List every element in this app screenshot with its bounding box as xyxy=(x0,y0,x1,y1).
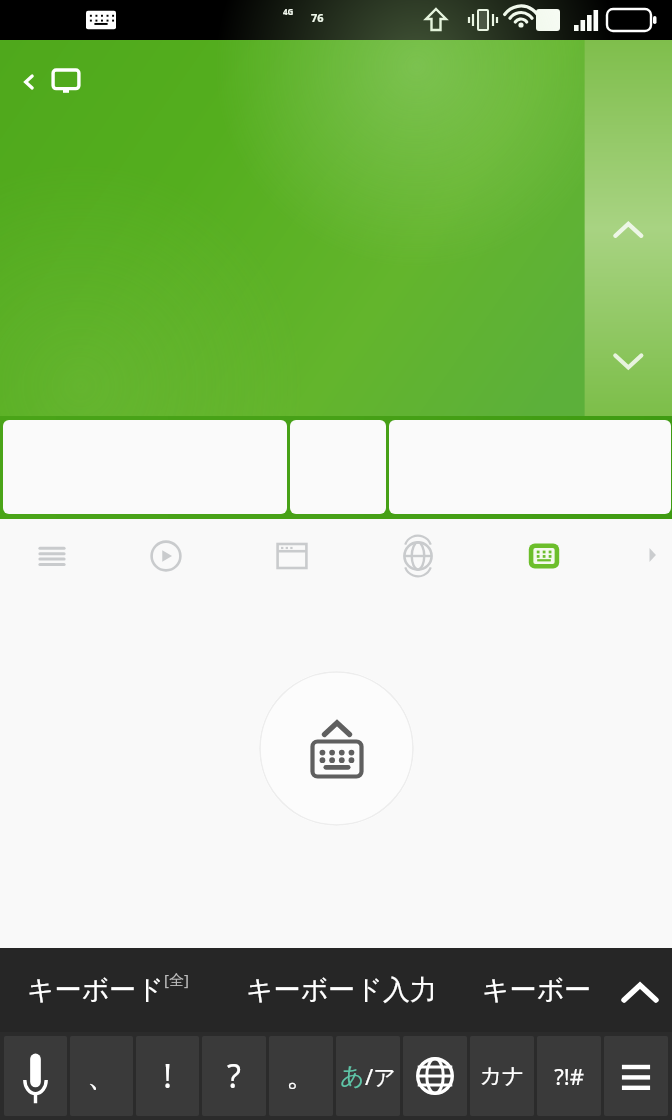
button[interactable] xyxy=(3,420,287,514)
staticText: 4G xyxy=(283,6,294,17)
button[interactable]: Play xyxy=(130,531,202,581)
staticText: ?!# xyxy=(554,1061,584,1091)
button[interactable]: Back xyxy=(12,65,46,99)
button[interactable]: カナ xyxy=(470,1036,534,1116)
button[interactable]: Menu xyxy=(16,531,88,581)
button[interactable]: Browser xyxy=(382,531,454,581)
staticText: 、 xyxy=(87,1057,117,1095)
staticText: カナ xyxy=(479,1062,525,1090)
button[interactable]: 、 xyxy=(70,1036,133,1116)
button[interactable]: ? xyxy=(202,1036,266,1116)
staticText: ! xyxy=(163,1054,172,1098)
button[interactable]: Voice input xyxy=(4,1036,67,1116)
button[interactable]: キーボード xyxy=(0,948,216,1032)
staticText: キーボー xyxy=(482,973,592,1007)
staticText: [全] xyxy=(164,969,189,989)
button[interactable]: ?!# xyxy=(537,1036,601,1116)
staticText: /ア xyxy=(365,1061,396,1091)
staticText: ? xyxy=(227,1054,241,1098)
button[interactable]: Keyboard menu xyxy=(604,1036,668,1116)
button[interactable]: More xyxy=(638,541,666,569)
button[interactable]: Cast to screen xyxy=(46,62,86,102)
button[interactable] xyxy=(290,420,386,514)
staticText: キーボード xyxy=(27,973,164,1007)
button[interactable]: Expand suggestions xyxy=(608,948,672,1032)
button[interactable]: Keyboard xyxy=(508,531,580,581)
button[interactable]: キーボー xyxy=(466,948,608,1032)
button[interactable] xyxy=(389,420,671,514)
staticText: 。 xyxy=(286,1057,316,1095)
button[interactable]: ! xyxy=(136,1036,199,1116)
button[interactable]: 。 xyxy=(269,1036,333,1116)
button[interactable]: Show keyboard xyxy=(259,671,414,826)
button[interactable]: キーボード入力 xyxy=(216,948,466,1032)
staticText: キーボード入力 xyxy=(246,973,437,1007)
staticText: あ xyxy=(340,1061,365,1091)
staticText: 76 xyxy=(311,10,324,25)
button[interactable]: Switch kana xyxy=(336,1036,400,1116)
button[interactable]: Change language xyxy=(403,1036,467,1116)
button[interactable]: Window xyxy=(256,531,328,581)
